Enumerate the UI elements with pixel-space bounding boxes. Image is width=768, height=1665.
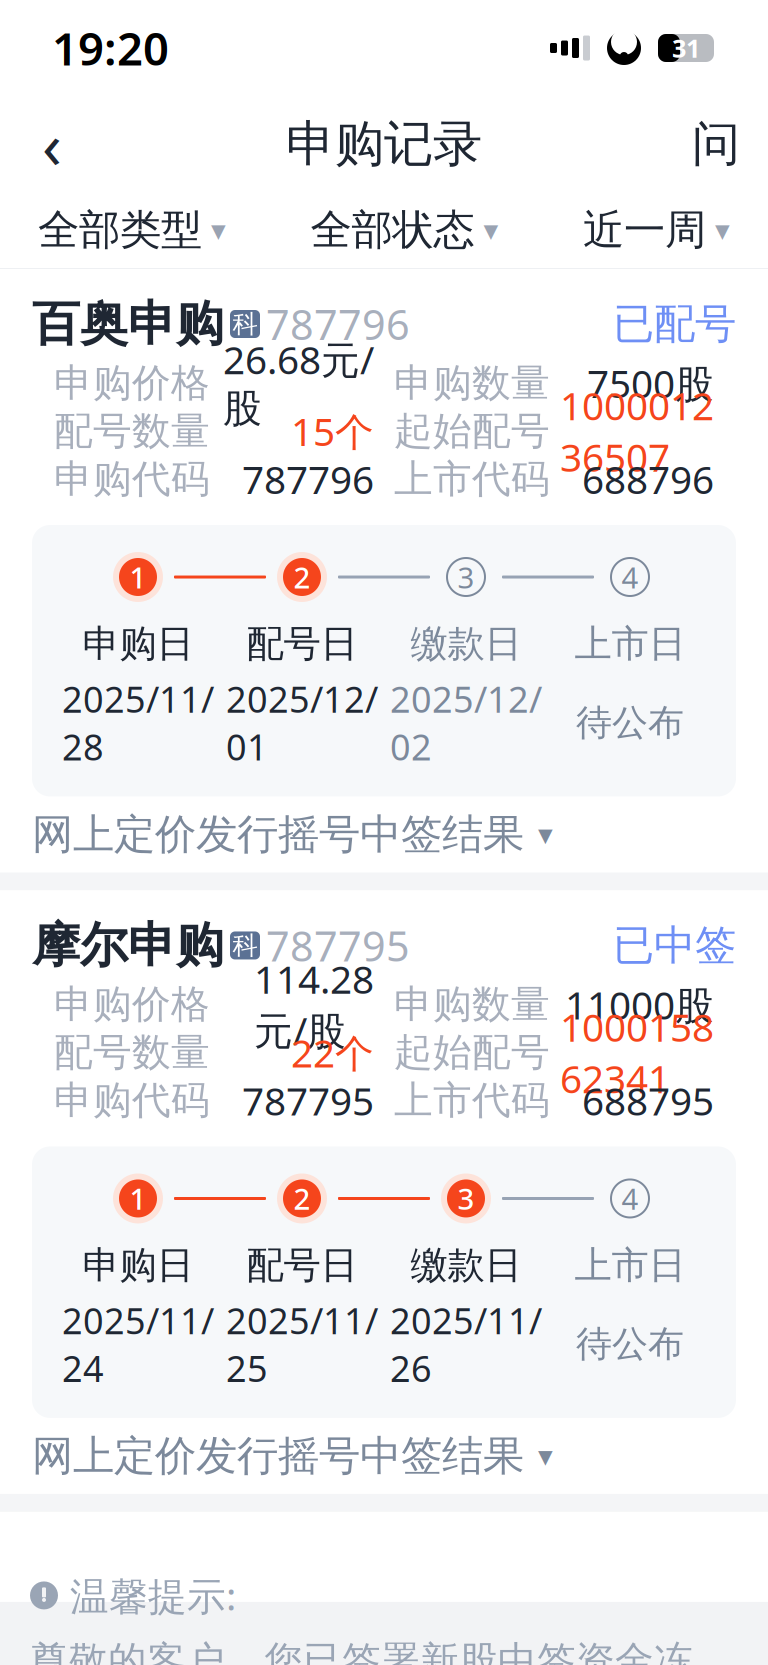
staticText: 7500股 [587, 357, 714, 409]
staticText: 上市代码 [394, 455, 550, 503]
staticText: 1 [129, 1179, 146, 1218]
staticText: 待公布 [576, 701, 684, 745]
staticText: 缴款日 [410, 1242, 521, 1288]
staticText: 缴款日 [410, 621, 521, 667]
staticText: 申购数量 [394, 981, 550, 1028]
staticText: 15个 [291, 405, 374, 457]
staticText: 100015862341 [560, 1001, 714, 1104]
staticText: 尊敬的客户，您已签署新股中签资金冻结服务，如您申购的新股 [30, 1637, 693, 1665]
staticText: 2025/11/25 [226, 1296, 378, 1392]
staticText: 申购价格 [54, 981, 210, 1028]
staticText: 配号日 [246, 1242, 357, 1288]
button[interactable]: 问 [686, 108, 746, 180]
staticText: 全部状态 [310, 205, 474, 255]
staticText: 787795 [242, 1075, 374, 1126]
staticText: 申购代码 [54, 455, 210, 503]
staticText: 2025/12/02 [390, 675, 542, 770]
staticText: ▾ [538, 1439, 553, 1473]
staticText: 2 [293, 1179, 310, 1218]
staticText: 申购数量 [394, 359, 550, 407]
staticText: 申购价格 [54, 359, 210, 407]
staticText: 2025/12/01 [226, 675, 378, 770]
staticText: 申购日 [82, 1242, 193, 1288]
button[interactable]: 全部类型 [38, 191, 226, 269]
staticText: 688795 [582, 1075, 714, 1126]
staticText: 3 [457, 1179, 474, 1218]
staticText: 待公布 [576, 1322, 684, 1366]
staticText: 近一周 [583, 205, 706, 255]
staticText: 全部类型 [38, 205, 202, 255]
staticText: 688796 [582, 453, 714, 505]
staticText: 2 [293, 557, 310, 596]
staticText: 网上定价发行摇号中签结果 [32, 809, 524, 860]
button[interactable]: 近一周 [583, 191, 730, 269]
staticText: 787796 [266, 297, 410, 351]
button[interactable]: 全部状态 [310, 191, 498, 269]
staticText: 上市代码 [394, 1077, 550, 1124]
staticText: 114.28元/股 [254, 953, 374, 1056]
staticText: 22个 [291, 1027, 374, 1078]
staticText: 2025/11/24 [62, 1296, 214, 1392]
staticText: 2025/11/28 [62, 675, 214, 770]
staticText: 1 [129, 557, 146, 596]
staticText: 787796 [242, 453, 374, 505]
staticText: 起始配号 [394, 1029, 550, 1076]
staticText: 19:20 [52, 18, 169, 78]
staticText: 百奥申购 [32, 294, 224, 353]
staticText: 787795 [266, 918, 410, 973]
staticText: 上市日 [574, 1242, 685, 1288]
staticText: ▾ [483, 213, 498, 247]
staticText: 上市日 [574, 621, 685, 667]
staticText: 4 [621, 1179, 638, 1218]
staticText: 配号数量 [54, 407, 210, 455]
staticText: 科 [232, 930, 257, 961]
staticText: 11000股 [565, 979, 714, 1030]
staticText: 配号日 [246, 621, 357, 667]
staticText: 配号数量 [54, 1029, 210, 1076]
button[interactable]: 返回 [22, 108, 82, 180]
staticText: 申购记录 [286, 114, 482, 174]
staticText: ‹ [42, 101, 62, 186]
staticText: 网上定价发行摇号中签结果 [32, 1431, 524, 1481]
staticText: 已配号 [613, 299, 736, 349]
staticText: 问 [692, 114, 740, 173]
staticText: ▾ [538, 818, 553, 851]
staticText: 100001236507 [560, 380, 714, 482]
staticText: 31 [672, 31, 700, 65]
staticText: ▾ [211, 213, 226, 247]
staticText: 4 [621, 557, 638, 596]
staticText: ▾ [715, 213, 730, 247]
staticText: 科 [232, 308, 257, 339]
staticText: 2025/11/26 [390, 1296, 542, 1392]
button[interactable]: 网上定价发行摇号中签结果 [32, 1418, 736, 1494]
staticText: 摩尔申购 [32, 916, 224, 975]
staticText: 3 [457, 557, 474, 596]
button[interactable]: 网上定价发行摇号中签结果 [32, 796, 736, 872]
staticText: 申购日 [82, 621, 193, 667]
staticText: 温馨提示: [70, 1570, 236, 1621]
staticText: 申购代码 [54, 1077, 210, 1124]
staticText: 26.68元/股 [223, 334, 374, 432]
staticText: 已中签 [613, 920, 736, 971]
staticText: 起始配号 [394, 407, 550, 455]
